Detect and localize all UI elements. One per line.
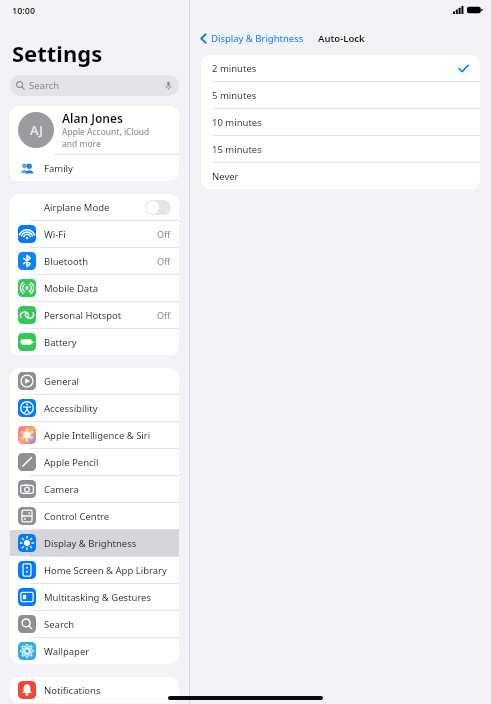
staticText: Personal Hotspot xyxy=(44,309,122,322)
button[interactable]: Airplane Mode toggle xyxy=(145,200,171,215)
staticText: Apple Intelligence & Siri xyxy=(44,429,151,442)
button[interactable]: Mobile Data xyxy=(10,275,179,301)
staticText: Display & Brightness xyxy=(44,537,137,550)
staticText: Off xyxy=(157,309,171,321)
button[interactable]: Camera xyxy=(10,476,179,502)
staticText: Battery xyxy=(44,336,77,349)
button[interactable]: Display & Brightness xyxy=(10,530,179,556)
staticText: Home Screen & App Library xyxy=(44,564,167,577)
button[interactable]: Wi-Fi xyxy=(10,221,179,247)
button[interactable]: Multitasking & Gestures xyxy=(10,584,179,610)
staticText: 2 minutes xyxy=(212,62,257,75)
staticText: 10:00 xyxy=(12,4,36,16)
staticText: Auto-Lock xyxy=(318,32,365,45)
staticText: Camera xyxy=(44,483,79,496)
button[interactable]: Search xyxy=(10,75,179,96)
staticText: Wallpaper xyxy=(44,645,90,658)
staticText: Alan Jones xyxy=(62,110,123,126)
staticText: Airplane Mode xyxy=(44,201,110,214)
button[interactable]: Accessibility xyxy=(10,395,179,421)
button[interactable]: Battery xyxy=(10,329,179,355)
staticText: 10 minutes xyxy=(212,116,262,129)
button[interactable]: Airplane Mode xyxy=(10,194,179,220)
button[interactable]: 2 minutes xyxy=(201,55,480,81)
staticText: Control Centre xyxy=(44,510,110,523)
button[interactable]: Apple Intelligence & Siri xyxy=(10,422,179,448)
button[interactable]: Wallpaper xyxy=(10,638,179,664)
staticText: Never xyxy=(212,170,239,183)
staticText: Search xyxy=(44,618,75,631)
button[interactable]: Search xyxy=(10,611,179,637)
button[interactable]: AJ xyxy=(10,106,179,154)
staticText: Wi-Fi xyxy=(44,228,66,241)
button[interactable]: 5 minutes xyxy=(201,82,480,108)
staticText: Off xyxy=(157,228,171,240)
staticText: Notifications xyxy=(44,684,101,697)
button[interactable]: General xyxy=(10,368,179,394)
staticText: and more xyxy=(62,138,101,150)
staticText: Off xyxy=(157,255,171,267)
button[interactable]: Control Centre xyxy=(10,503,179,529)
button[interactable]: 10 minutes xyxy=(201,109,480,135)
staticText: Multitasking & Gestures xyxy=(44,591,152,604)
staticText: General xyxy=(44,375,80,388)
button[interactable]: 15 minutes xyxy=(201,136,480,162)
staticText: 5 minutes xyxy=(212,89,257,102)
button[interactable]: Home Screen & App Library xyxy=(10,557,179,583)
staticText: Settings xyxy=(12,38,103,68)
staticText: Apple Account, iCloud xyxy=(62,126,150,138)
button[interactable]: Never xyxy=(201,163,480,189)
staticText: Search xyxy=(29,79,60,92)
staticText: AJ xyxy=(30,121,43,139)
staticText: 15 minutes xyxy=(212,143,262,156)
button[interactable]: Personal Hotspot xyxy=(10,302,179,328)
button[interactable]: Display & Brightness xyxy=(198,30,306,47)
staticText: Display & Brightness xyxy=(211,32,304,45)
button[interactable]: Apple Pencil xyxy=(10,449,179,475)
staticText: Accessibility xyxy=(44,402,98,415)
staticText: Bluetooth xyxy=(44,255,89,268)
button[interactable]: Notifications xyxy=(10,677,179,703)
staticText: Family xyxy=(44,162,73,175)
button[interactable]: Bluetooth xyxy=(10,248,179,274)
staticText: Mobile Data xyxy=(44,282,98,295)
button[interactable]: Family xyxy=(10,155,179,181)
staticText: Apple Pencil xyxy=(44,456,99,469)
